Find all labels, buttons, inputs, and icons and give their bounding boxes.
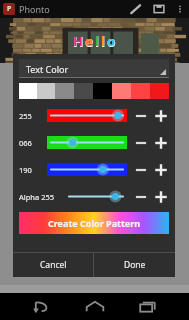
staticText: Done (124, 259, 146, 271)
staticText: H (73, 32, 84, 51)
button[interactable]: Decrease Alpha 255 (133, 189, 149, 205)
button[interactable]: Increase 255 (153, 108, 169, 124)
button[interactable]: Increase 190 (153, 162, 169, 178)
button[interactable]: Recent apps (135, 294, 161, 320)
staticText: P (7, 4, 12, 14)
button[interactable]: Text Color (19, 59, 169, 78)
staticText: e (85, 32, 93, 50)
staticText: Phonto (19, 3, 50, 15)
button[interactable]: Save (152, 2, 166, 16)
staticText: Create Color Pattern (48, 217, 141, 229)
button[interactable]: Increase Alpha 255 (153, 189, 169, 205)
staticText: H (73, 32, 83, 50)
staticText: 190 (19, 165, 32, 175)
staticText: o (107, 32, 116, 51)
button[interactable]: Home (82, 294, 108, 320)
button[interactable]: Alpha 255 (13, 183, 175, 210)
button[interactable]: Decrease 255 (133, 108, 149, 124)
button[interactable]: Increase 066 (153, 135, 169, 151)
staticText: Cancel (40, 259, 67, 271)
button[interactable]: More options (174, 3, 186, 15)
button[interactable]: 066 (13, 129, 175, 156)
button[interactable]: Decrease 066 (133, 135, 149, 151)
staticText: Text Color (26, 63, 69, 75)
button[interactable]: Brush (128, 2, 143, 17)
staticText: 066 (19, 138, 32, 148)
button[interactable]: Create Color Pattern (19, 212, 169, 234)
button[interactable]: Cancel (13, 253, 93, 277)
staticText: Alpha 255 (19, 192, 55, 202)
button[interactable]: Decrease 190 (133, 162, 149, 178)
staticText: l (101, 32, 106, 51)
staticText: o (107, 32, 116, 50)
button[interactable]: 190 (13, 156, 175, 183)
button[interactable]: Done (94, 253, 175, 277)
staticText: l (95, 32, 99, 50)
button[interactable]: 255 (13, 102, 175, 129)
staticText: l (95, 32, 100, 51)
button[interactable]: Back (28, 294, 54, 320)
staticText: l (101, 32, 105, 50)
staticText: e (85, 32, 94, 51)
staticText: 255 (19, 111, 32, 121)
